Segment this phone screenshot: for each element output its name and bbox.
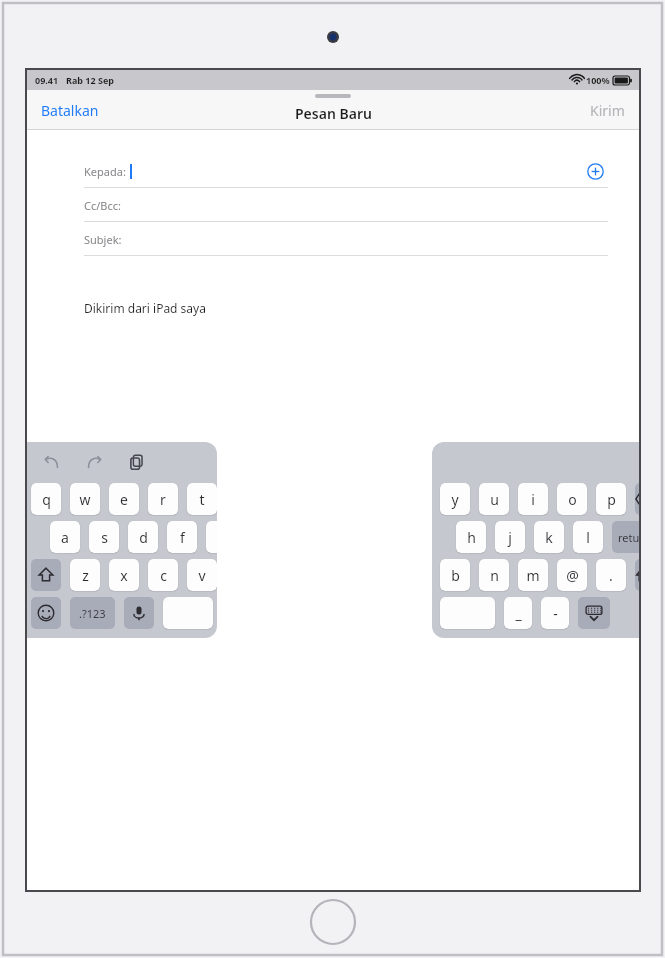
button[interactable]: h [456, 521, 486, 553]
button[interactable]: Space [163, 597, 213, 629]
button[interactable]: s [89, 521, 119, 553]
button[interactable]: Space [440, 597, 495, 629]
staticText: m [526, 566, 540, 585]
staticText: Pesan Baru [295, 104, 372, 123]
staticText: f [180, 528, 185, 547]
button[interactable]: Emoji [31, 597, 61, 629]
button[interactable]: n [479, 559, 509, 591]
button[interactable]: Dictate [124, 597, 154, 629]
button[interactable]: p [596, 483, 626, 515]
staticText: Subjek: [84, 232, 122, 247]
button[interactable]: k [534, 521, 564, 553]
button[interactable]: Kirim [580, 95, 635, 126]
staticText: t [199, 490, 205, 509]
button[interactable]: Batalkan [31, 95, 109, 126]
staticText: - [553, 604, 558, 623]
button[interactable]: w [70, 483, 100, 515]
button[interactable]: r [148, 483, 178, 515]
button[interactable]: .?123 [70, 597, 115, 629]
staticText: d [139, 528, 148, 547]
button[interactable]: y [440, 483, 470, 515]
staticText: a [61, 528, 69, 547]
button[interactable]: Hide keyboard [578, 597, 610, 629]
staticText: Rab 12 Sep [66, 74, 114, 86]
button[interactable]: a [50, 521, 80, 553]
staticText: b [451, 566, 460, 585]
staticText: return [618, 530, 641, 545]
button[interactable]: g [206, 521, 217, 553]
staticText: i [531, 490, 535, 509]
button[interactable]: m [518, 559, 548, 591]
button[interactable]: i [518, 483, 548, 515]
button[interactable]: j [495, 521, 525, 553]
staticText: 09.41 [35, 74, 59, 86]
button[interactable]: Backspace [635, 483, 641, 515]
button[interactable]: b [440, 559, 470, 591]
button[interactable]: Shift [31, 559, 61, 591]
staticText: z [82, 566, 89, 585]
staticText: .?123 [79, 606, 106, 621]
button[interactable]: o [557, 483, 587, 515]
staticText: q [42, 490, 51, 509]
button[interactable]: Shift [635, 559, 641, 591]
staticText: Cc/Bcc: [84, 198, 121, 213]
staticText: Kepada: [84, 164, 126, 179]
staticText: l [586, 528, 590, 547]
button[interactable]: d [128, 521, 158, 553]
staticText: e [120, 490, 128, 509]
staticText: r [160, 490, 166, 509]
button[interactable]: return [612, 521, 641, 553]
staticText: k [545, 528, 553, 547]
button[interactable]: Undo [39, 450, 63, 474]
staticText: h [467, 528, 476, 547]
staticText: u [490, 490, 499, 509]
button[interactable]: _ [504, 597, 532, 629]
button[interactable]: - [541, 597, 569, 629]
button[interactable]: e [109, 483, 139, 515]
button[interactable]: @ [557, 559, 587, 591]
staticText: Batalkan [41, 101, 99, 120]
staticText: _ [515, 604, 522, 623]
button[interactable]: Subjek: [84, 222, 608, 256]
staticText: x [120, 566, 128, 585]
staticText: j [508, 528, 512, 547]
button[interactable]: t [187, 483, 217, 515]
staticText: p [607, 490, 616, 509]
button[interactable]: Redo [83, 450, 107, 474]
staticText: c [160, 566, 167, 585]
staticText: . [609, 566, 613, 585]
button[interactable]: q [31, 483, 61, 515]
staticText: Kirim [590, 101, 625, 120]
button[interactable]: z [70, 559, 100, 591]
button[interactable]: Paste [125, 450, 149, 474]
button[interactable]: u [479, 483, 509, 515]
staticText: 100% [586, 74, 610, 86]
button[interactable]: v [187, 559, 217, 591]
button[interactable]: f [167, 521, 197, 553]
staticText: v [198, 566, 206, 585]
button[interactable]: Add recipient [582, 158, 608, 184]
staticText: o [568, 490, 577, 509]
button[interactable]: l [573, 521, 603, 553]
staticText: w [79, 490, 91, 509]
staticText: Dikirim dari iPad saya [84, 300, 206, 316]
staticText: y [451, 490, 459, 509]
staticText: @ [566, 566, 579, 585]
staticText: n [490, 566, 499, 585]
button[interactable]: Kepada: [84, 154, 608, 188]
button[interactable]: Cc/Bcc: [84, 188, 608, 222]
button[interactable]: x [109, 559, 139, 591]
staticText: s [101, 528, 108, 547]
button[interactable]: c [148, 559, 178, 591]
button[interactable]: . [596, 559, 626, 591]
